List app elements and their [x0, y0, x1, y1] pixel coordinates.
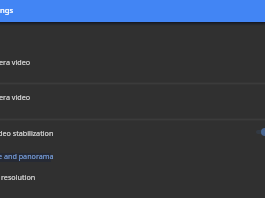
button[interactable]: Toggle video stabilization [250, 124, 265, 140]
staticText: era video [0, 57, 31, 67]
staticText: e and panorama [0, 151, 54, 161]
staticText: deo stabilization [0, 128, 54, 138]
button[interactable]: era video [0, 47, 265, 82]
button[interactable]: deo stabilization [0, 121, 265, 147]
button[interactable]: ngs [0, 0, 265, 22]
staticText: ngs [0, 5, 14, 15]
button[interactable]: e and panorama [0, 148, 265, 170]
button[interactable]: era video [0, 85, 265, 118]
staticText: resolution [1, 172, 36, 182]
staticText: era video [0, 92, 31, 102]
button[interactable]: resolution [0, 170, 265, 192]
